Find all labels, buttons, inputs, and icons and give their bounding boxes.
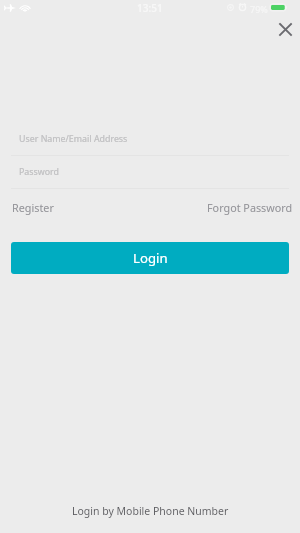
button[interactable]: User Name/Email Address [0,123,300,155]
staticText: 13:51 [137,1,163,15]
button[interactable]: Password [0,156,300,188]
staticText: Register [12,200,54,215]
staticText: 79% [250,3,268,15]
staticText: Login [133,249,168,267]
button[interactable]: Login [11,242,289,274]
staticText: Password [19,166,59,178]
button[interactable]: Login by Mobile Phone Number [62,500,239,522]
staticText: Forgot Password [207,200,293,215]
button[interactable]: Forgot Password [207,195,293,220]
staticText: User Name/Email Address [19,133,128,145]
button[interactable]: Close [271,15,299,43]
staticText: Login by Mobile Phone Number [72,504,229,518]
button[interactable]: Register [12,195,54,220]
